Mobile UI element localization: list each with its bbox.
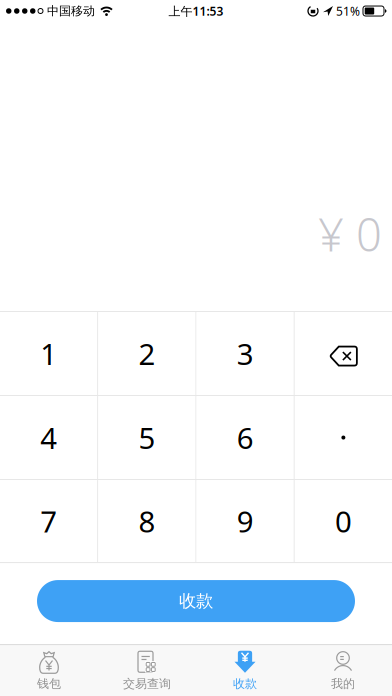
staticText: 收款 <box>179 590 213 612</box>
button[interactable]: 5 <box>98 396 195 479</box>
button[interactable]: 2 <box>98 312 195 395</box>
staticText: 收款 <box>233 676 257 691</box>
button[interactable]: 7 <box>0 480 97 562</box>
button[interactable]: 收款 <box>37 580 355 622</box>
button[interactable]: 我的 <box>294 650 392 691</box>
staticText: 上午11:53 <box>168 3 223 19</box>
button[interactable]: Decimal point <box>295 396 392 479</box>
staticText: 钱包 <box>37 676 61 691</box>
staticText: ¥ 0 <box>318 204 382 264</box>
button[interactable]: 1 <box>0 312 97 395</box>
button[interactable]: 收款 <box>196 650 294 691</box>
staticText: 9 <box>237 502 254 541</box>
staticText: 交易查询 <box>123 676 171 691</box>
staticText: 6 <box>237 418 254 457</box>
button[interactable]: 8 <box>98 480 195 562</box>
staticText: 中国移动 <box>47 4 95 18</box>
staticText: 1 <box>40 334 57 373</box>
button[interactable]: 3 <box>196 312 294 395</box>
button[interactable]: 钱包 <box>0 650 98 691</box>
staticText: 7 <box>40 502 57 541</box>
button[interactable]: 4 <box>0 396 97 479</box>
button[interactable]: 交易查询 <box>98 650 196 691</box>
button[interactable]: 6 <box>196 396 294 479</box>
staticText: 4 <box>40 418 57 457</box>
button[interactable]: Delete <box>295 312 392 395</box>
staticText: 0 <box>335 502 352 541</box>
staticText: 我的 <box>331 676 355 691</box>
button[interactable]: 9 <box>196 480 294 562</box>
staticText: 51% <box>336 3 360 19</box>
staticText: 3 <box>237 334 254 373</box>
staticText: 5 <box>138 418 155 457</box>
button[interactable]: 0 <box>295 480 392 562</box>
staticText: 8 <box>138 502 155 541</box>
staticText: 2 <box>138 334 155 373</box>
